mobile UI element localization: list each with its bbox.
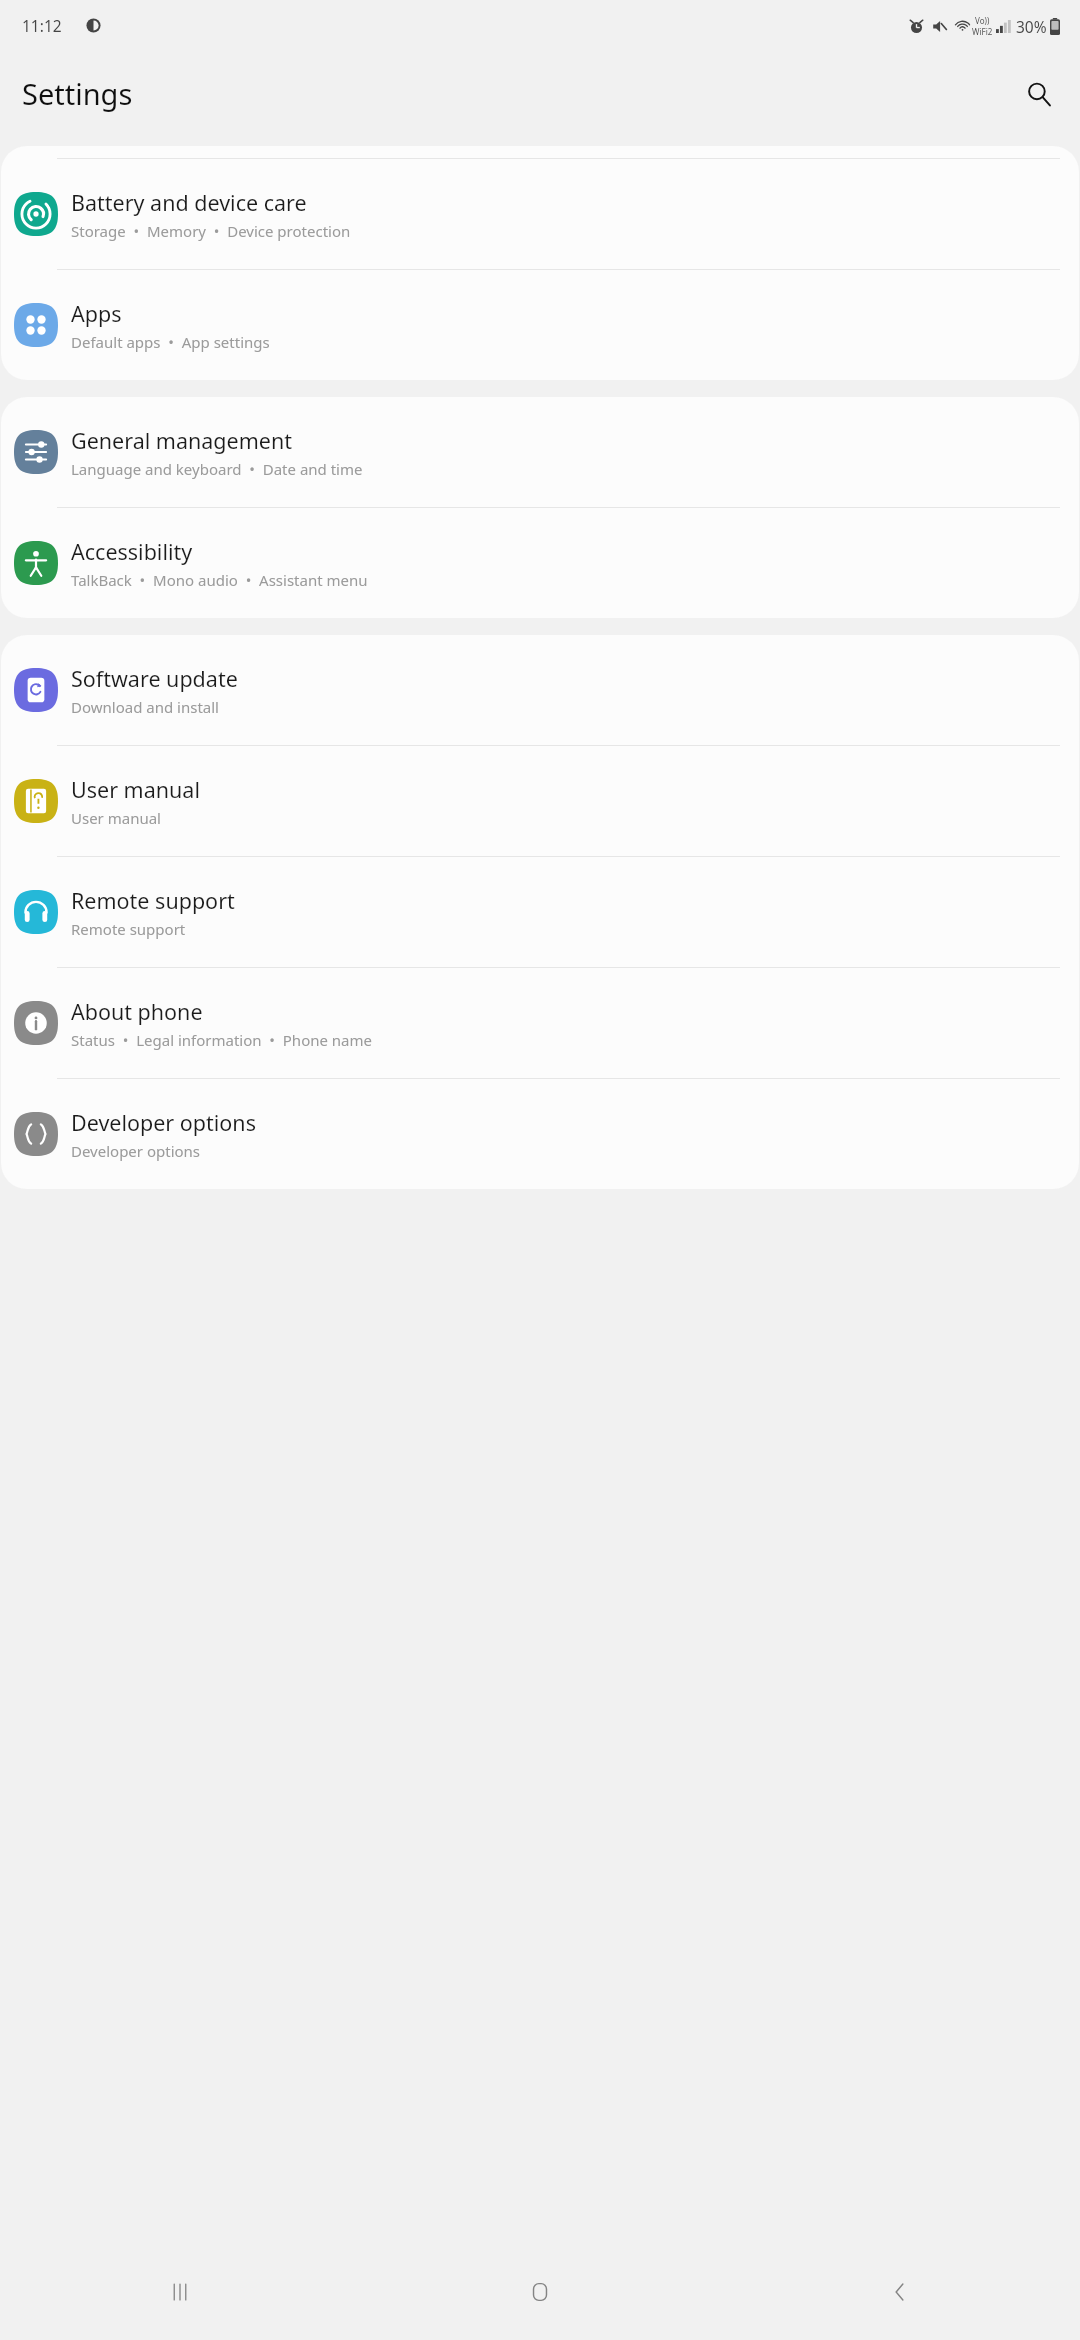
button[interactable]: User manual <box>1 746 1079 856</box>
staticText: WiFi2 <box>972 26 993 37</box>
staticText: User manual <box>71 775 200 804</box>
staticText: Developer options <box>71 1108 256 1137</box>
staticText: Battery and device care <box>71 188 307 217</box>
staticText: About phone <box>71 997 203 1026</box>
button[interactable]: Accessibility <box>1 508 1079 618</box>
staticText: Download and install <box>71 697 219 717</box>
button[interactable]: General management <box>1 397 1079 507</box>
staticText: 30% <box>1016 16 1047 37</box>
staticText: Apps <box>71 299 122 328</box>
button[interactable]: Recents <box>0 2244 360 2340</box>
button[interactable]: Apps <box>1 270 1079 380</box>
staticText: Default apps • App settings <box>71 332 270 352</box>
staticText: Software update <box>71 664 238 693</box>
staticText: Settings <box>22 74 133 113</box>
staticText: Developer options <box>71 1141 201 1161</box>
staticText: Vo)) <box>975 15 990 26</box>
staticText: Accessibility <box>71 537 193 566</box>
button[interactable]: Software update <box>1 635 1079 745</box>
staticText: Remote support <box>71 886 235 915</box>
staticText: Status • Legal information • Phone name <box>71 1030 373 1050</box>
button[interactable]: Search <box>1015 70 1063 118</box>
button[interactable]: Home <box>360 2244 720 2340</box>
staticText: User manual <box>71 808 161 828</box>
button[interactable]: Developer options <box>1 1079 1079 1189</box>
button[interactable]: Battery and device care <box>1 159 1079 269</box>
staticText: Storage • Memory • Device protection <box>71 221 351 241</box>
staticText: Language and keyboard • Date and time <box>71 459 363 479</box>
staticText: Remote support <box>71 919 186 939</box>
staticText: 11:12 <box>22 15 62 36</box>
button[interactable]: About phone <box>1 968 1079 1078</box>
staticText: TalkBack • Mono audio • Assistant menu <box>71 570 368 590</box>
button[interactable]: Remote support <box>1 857 1079 967</box>
staticText: General management <box>71 426 292 455</box>
